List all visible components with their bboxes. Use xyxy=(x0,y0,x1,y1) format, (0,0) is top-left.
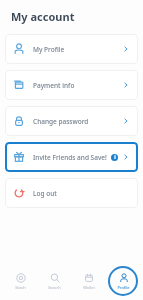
staticText: My account xyxy=(11,9,75,24)
button[interactable]: Search xyxy=(39,266,69,296)
button[interactable]: Profile xyxy=(108,266,138,296)
button[interactable]: Wallet xyxy=(74,266,104,296)
staticText: Profile xyxy=(117,285,130,290)
staticText: Wallet xyxy=(83,285,95,290)
button[interactable]: Log out xyxy=(5,178,138,208)
staticText: Payment info xyxy=(33,81,75,90)
button[interactable]: Change password xyxy=(5,106,138,136)
staticText: Stash xyxy=(15,285,26,290)
staticText: Log out xyxy=(33,189,57,198)
staticText: Invite Friends and Save! xyxy=(33,153,107,162)
button[interactable]: Stash xyxy=(5,266,35,296)
staticText: Search xyxy=(48,285,61,290)
staticText: i xyxy=(114,154,116,161)
button[interactable]: Invite Friends and Save! xyxy=(5,142,138,172)
staticText: My Profile xyxy=(33,45,65,54)
staticText: Change password xyxy=(33,117,89,126)
button[interactable]: Payment info xyxy=(5,70,138,100)
button[interactable]: My Profile xyxy=(5,34,138,64)
